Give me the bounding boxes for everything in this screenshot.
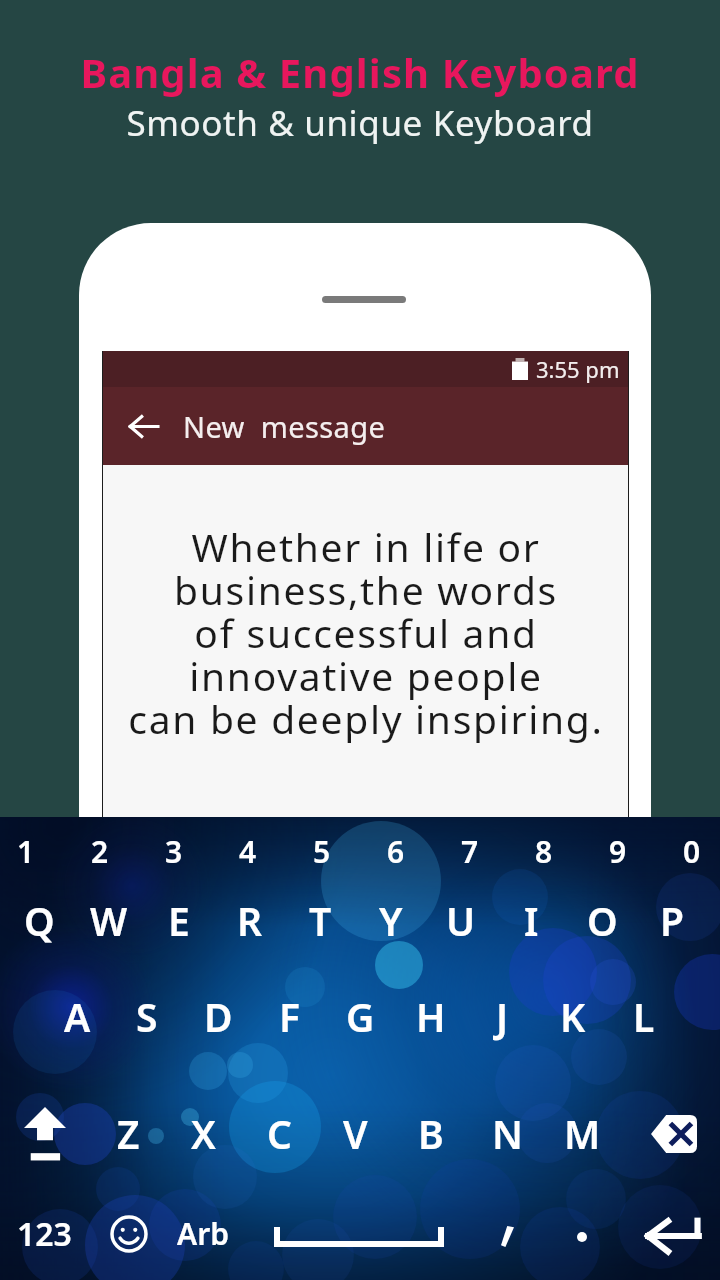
button[interactable]: L: [609, 986, 679, 1046]
button[interactable]: J: [467, 986, 537, 1046]
staticText: S: [136, 990, 158, 1043]
staticText: 6: [387, 831, 405, 872]
button[interactable]: C: [244, 1103, 314, 1163]
button[interactable]: A: [42, 986, 112, 1046]
staticText: I: [524, 894, 539, 947]
button[interactable]: Comma: [484, 1213, 530, 1259]
button[interactable]: Back: [123, 406, 163, 446]
staticText: R: [237, 894, 263, 947]
staticText: 5: [313, 831, 331, 872]
button[interactable]: P: [637, 890, 707, 950]
staticText: J: [496, 990, 509, 1043]
staticText: K: [560, 990, 586, 1043]
button[interactable]: Space: [264, 1207, 454, 1267]
button[interactable]: R: [215, 890, 285, 950]
button[interactable]: 5: [287, 821, 357, 881]
staticText: M: [564, 1107, 601, 1160]
staticText: Q: [24, 894, 55, 947]
button[interactable]: Q: [4, 890, 74, 950]
staticText: D: [204, 990, 233, 1043]
staticText: 3: [165, 831, 183, 872]
staticText: V: [343, 1107, 368, 1160]
button[interactable]: I: [496, 890, 566, 950]
button[interactable]: 8: [509, 821, 579, 881]
staticText: F: [279, 990, 300, 1043]
button[interactable]: 1: [0, 821, 61, 881]
staticText: Z: [117, 1107, 140, 1160]
button[interactable]: K: [538, 986, 608, 1046]
button[interactable]: Shift: [8, 1097, 82, 1171]
staticText: W: [90, 894, 128, 947]
staticText: A: [64, 990, 91, 1043]
button[interactable]: X: [168, 1103, 238, 1163]
staticText: G: [346, 990, 375, 1043]
button[interactable]: 123: [9, 1204, 79, 1264]
button[interactable]: F: [254, 986, 324, 1046]
staticText: Smooth & unique Keyboard: [126, 99, 594, 147]
button[interactable]: Z: [93, 1103, 163, 1163]
button[interactable]: W: [74, 890, 144, 950]
staticText: C: [267, 1107, 292, 1160]
button[interactable]: 0: [657, 821, 720, 881]
button[interactable]: N: [472, 1103, 542, 1163]
staticText: B: [418, 1107, 444, 1160]
button[interactable]: S: [112, 986, 182, 1046]
staticText: O: [587, 894, 618, 947]
button[interactable]: Backspace: [637, 1103, 711, 1165]
button[interactable]: 6: [361, 821, 431, 881]
button[interactable]: Y: [356, 890, 426, 950]
button[interactable]: 7: [435, 821, 505, 881]
button[interactable]: B: [396, 1103, 466, 1163]
staticText: N: [492, 1107, 523, 1160]
staticText: Y: [379, 894, 403, 947]
button[interactable]: Enter: [639, 1208, 709, 1266]
staticText: E: [168, 894, 190, 947]
staticText: P: [660, 894, 684, 947]
staticText: X: [191, 1107, 216, 1160]
staticText: 9: [609, 831, 627, 872]
staticText: H: [416, 990, 446, 1043]
button[interactable]: 3: [139, 821, 209, 881]
button[interactable]: Arb: [168, 1203, 238, 1263]
button[interactable]: D: [183, 986, 253, 1046]
staticText: U: [446, 894, 476, 947]
staticText: 123: [17, 1212, 72, 1256]
button[interactable]: G: [325, 986, 395, 1046]
button[interactable]: M: [547, 1103, 617, 1163]
button[interactable]: V: [320, 1103, 390, 1163]
staticText: 8: [535, 831, 553, 872]
button[interactable]: Emoji: [97, 1202, 161, 1266]
button[interactable]: T: [285, 890, 355, 950]
staticText: 0: [683, 831, 701, 872]
button[interactable]: H: [396, 986, 466, 1046]
staticText: New message: [183, 407, 386, 446]
staticText: L: [633, 990, 655, 1043]
button[interactable]: 4: [213, 821, 283, 881]
button[interactable]: U: [426, 890, 496, 950]
staticText: 7: [461, 831, 479, 872]
button[interactable]: O: [567, 890, 637, 950]
staticText: Arb: [177, 1213, 229, 1254]
staticText: 2: [91, 831, 109, 872]
button[interactable]: 9: [583, 821, 653, 881]
staticText: 1: [17, 831, 35, 872]
staticText: 4: [239, 831, 257, 872]
staticText: Whether in life or business,the words of…: [128, 520, 604, 745]
button[interactable]: E: [144, 890, 214, 950]
button[interactable]: Period: [560, 1215, 604, 1259]
button[interactable]: 2: [65, 821, 135, 881]
staticText: 3:55 pm: [536, 354, 620, 384]
staticText: T: [309, 894, 332, 947]
staticText: Bangla & English Keyboard: [80, 45, 640, 99]
button[interactable]: Back: [103, 387, 628, 465]
